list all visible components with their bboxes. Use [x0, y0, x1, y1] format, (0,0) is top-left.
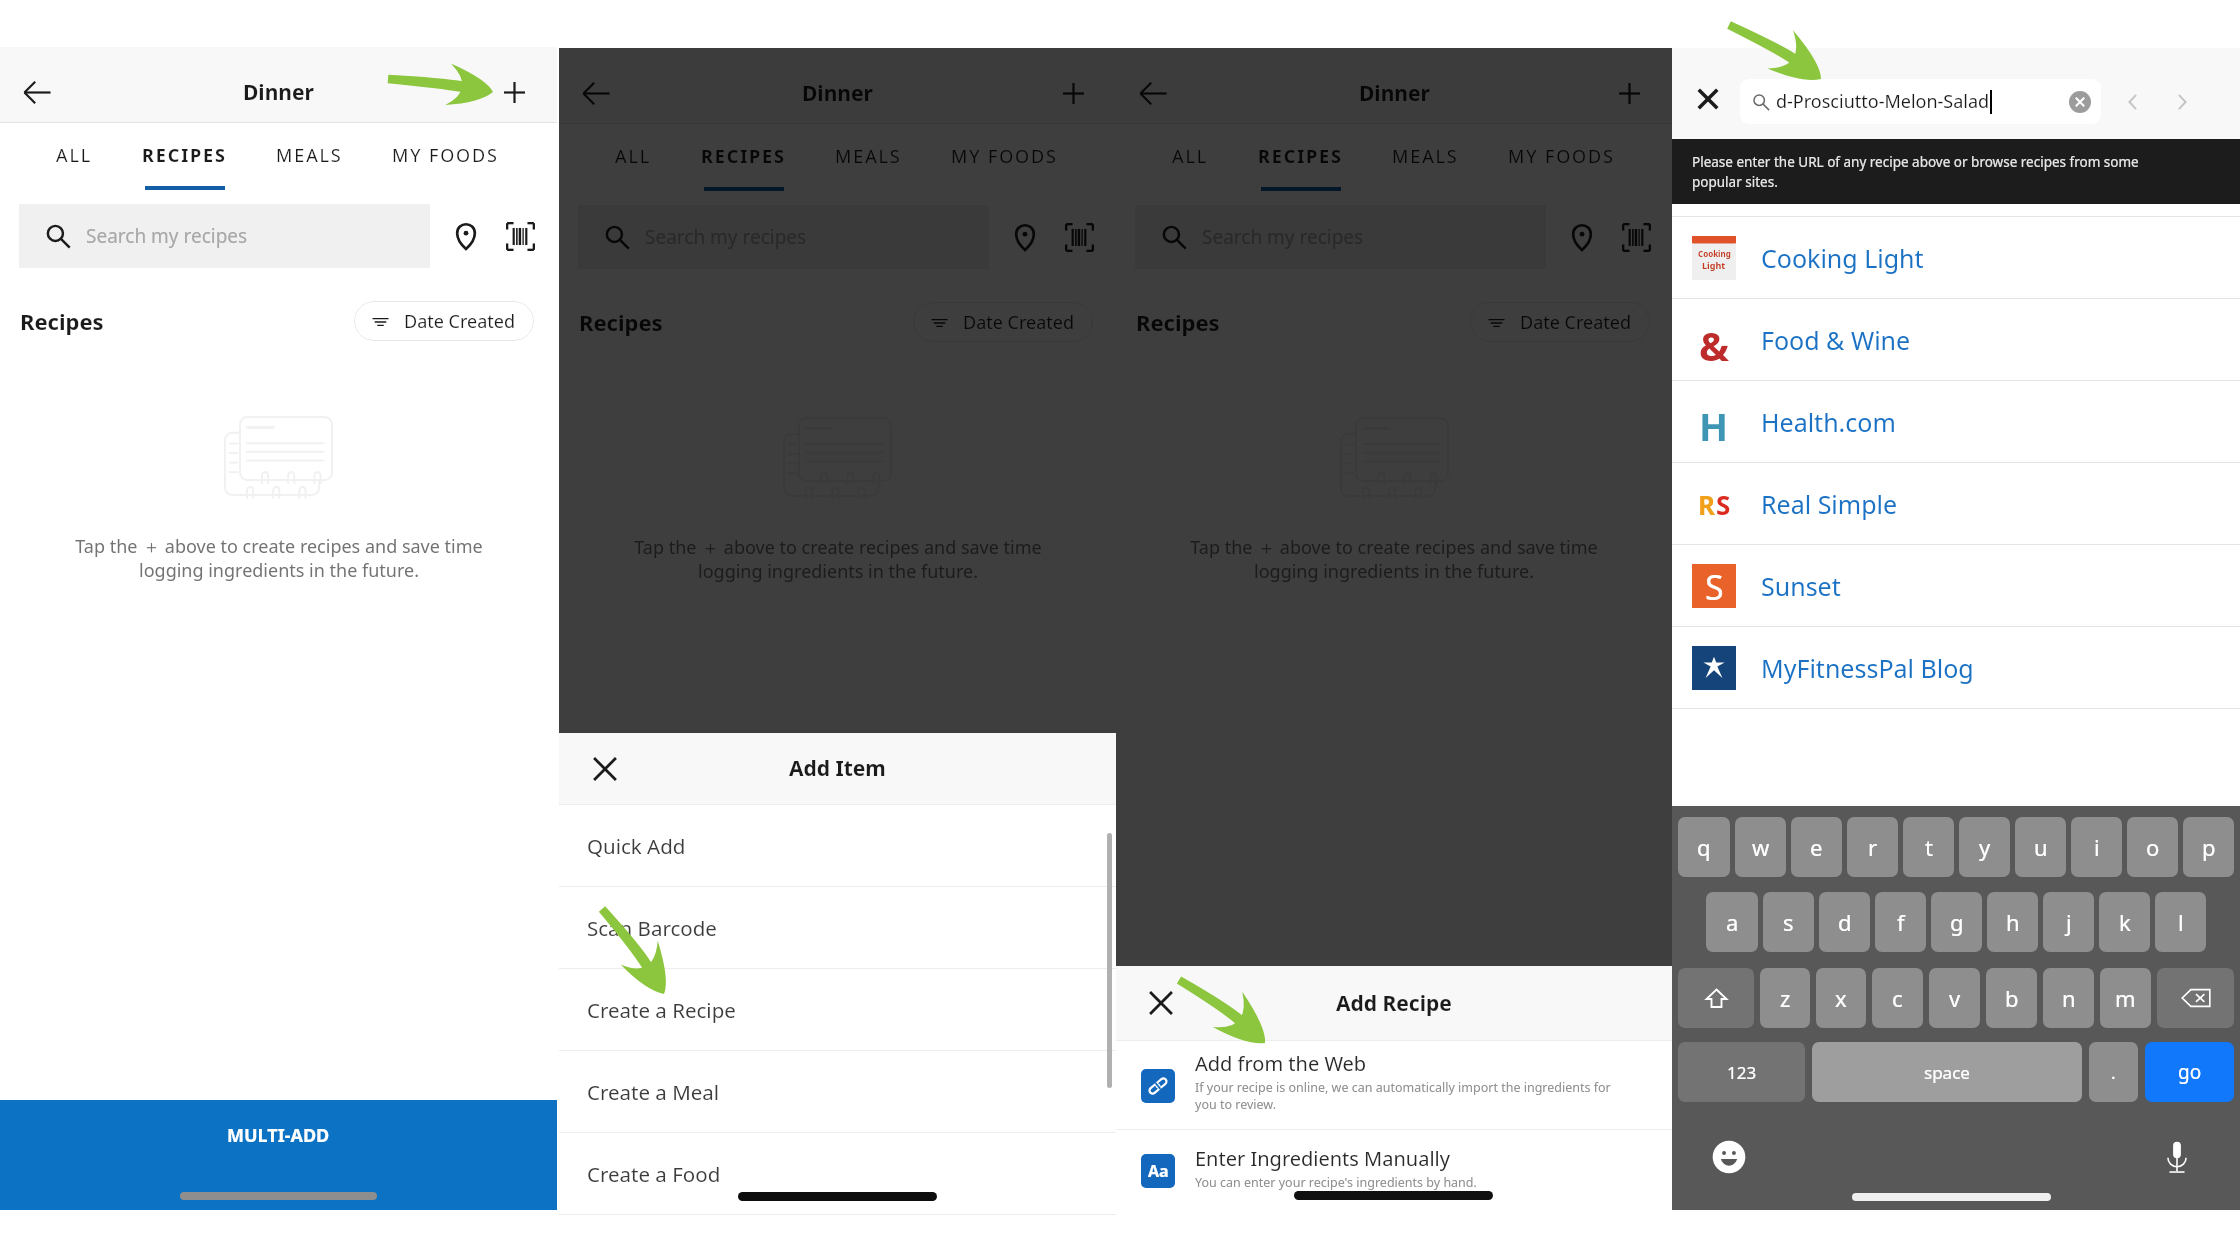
staticText: ALL [615, 144, 652, 169]
button[interactable]: MEALS [276, 143, 343, 193]
button[interactable]: Date Created [354, 301, 534, 341]
button[interactable]: w [1735, 817, 1786, 877]
button[interactable]: RECIPES [142, 143, 227, 193]
button[interactable]: v [1929, 968, 1980, 1028]
button[interactable]: go [2145, 1042, 2234, 1102]
staticText: ALL [1172, 144, 1209, 169]
staticText: Sunset [1761, 569, 1841, 603]
button[interactable]: Search my recipes [19, 204, 430, 268]
button[interactable]: y [1959, 817, 2010, 877]
button[interactable]: Emoji [1712, 1140, 1746, 1174]
button[interactable]: Close [1148, 990, 1174, 1016]
staticText: o [2146, 832, 2160, 862]
button[interactable]: ALL [615, 144, 652, 194]
button[interactable]: ALL [1172, 144, 1209, 194]
button[interactable]: Add [504, 82, 525, 103]
staticText: x [1835, 983, 1847, 1013]
button[interactable]: & [1672, 299, 2240, 380]
button[interactable]: h [1987, 892, 2038, 952]
button[interactable]: q [1678, 817, 1730, 877]
button[interactable]: Location [442, 204, 490, 268]
button[interactable]: i [2071, 817, 2122, 877]
button[interactable]: Clear [2069, 91, 2091, 113]
button[interactable]: Scan barcode [496, 204, 544, 268]
button[interactable]: MyFitnessPal Blog [1672, 627, 2240, 708]
button[interactable]: g [1931, 892, 1982, 952]
button[interactable]: MY FOODS [1508, 144, 1615, 194]
button[interactable]: l [2155, 892, 2206, 952]
button[interactable]: MY FOODS [951, 144, 1058, 194]
button[interactable]: u [2015, 817, 2066, 877]
button[interactable]: Close [1697, 88, 1719, 110]
button[interactable]: Location [1558, 205, 1606, 269]
button[interactable]: RECIPES [1258, 144, 1343, 194]
button[interactable]: Date Created [913, 302, 1093, 342]
staticText: Dinner [1359, 79, 1430, 108]
button[interactable]: Create a Food [559, 1133, 1116, 1214]
button[interactable]: s [1763, 892, 1814, 952]
staticText: n [2062, 983, 2076, 1013]
button[interactable]: p [2183, 817, 2234, 877]
button[interactable]: MULTI-ADD [1116, 1101, 1672, 1211]
button[interactable]: f [1875, 892, 1926, 952]
staticText: Cooking Light [1761, 241, 1924, 275]
button[interactable]: Aa [1116, 1130, 1672, 1210]
button[interactable]: r [1847, 817, 1898, 877]
button[interactable]: Backspace [2157, 968, 2234, 1028]
button[interactable]: Date Created [1470, 302, 1650, 342]
button[interactable]: Quick Add [559, 805, 1116, 886]
button[interactable]: Forward [2162, 79, 2202, 124]
staticText: MULTI-ADD [786, 1124, 889, 1149]
button[interactable]: . [2089, 1042, 2138, 1102]
button[interactable]: Voice input [2160, 1140, 2194, 1174]
staticText: t [1925, 832, 1933, 862]
button[interactable]: H [1672, 381, 2240, 462]
button[interactable]: e [1791, 817, 1842, 877]
button[interactable]: R [1672, 463, 2240, 544]
button[interactable]: Shift [1678, 968, 1754, 1028]
button[interactable]: Scan barcode [1612, 205, 1660, 269]
button[interactable]: Scan Barcode [559, 887, 1116, 968]
button[interactable]: RECIPES [701, 144, 786, 194]
button[interactable]: Search my recipes [1135, 205, 1546, 269]
button[interactable]: 123 [1678, 1042, 1805, 1102]
button[interactable]: Back [1139, 79, 1168, 108]
button[interactable]: space [1812, 1042, 2082, 1102]
button[interactable]: Close [592, 756, 618, 782]
button[interactable]: x [1816, 968, 1866, 1028]
button[interactable]: k [2099, 892, 2150, 952]
button[interactable]: MULTI-ADD [559, 1101, 1116, 1211]
button[interactable]: a [1706, 892, 1758, 952]
button[interactable]: o [2127, 817, 2178, 877]
staticText: Food & Wine [1761, 323, 1911, 357]
button[interactable]: d-Prosciutto-Melon-Salad [1740, 79, 2101, 124]
button[interactable]: Back [582, 79, 611, 108]
button[interactable]: MEALS [1392, 144, 1459, 194]
button[interactable]: S [1672, 545, 2240, 626]
button[interactable]: Search my recipes [578, 205, 989, 269]
staticText: m [2115, 983, 2136, 1013]
button[interactable]: d [1819, 892, 1870, 952]
button[interactable]: Create a Recipe [559, 969, 1116, 1050]
button[interactable]: MY FOODS [392, 143, 499, 193]
button[interactable]: z [1760, 968, 1810, 1028]
button[interactable]: Back [23, 78, 52, 107]
button[interactable]: n [2043, 968, 2094, 1028]
button[interactable]: MULTI-ADD [0, 1100, 557, 1210]
button[interactable]: MEALS [835, 144, 902, 194]
button[interactable]: Add [1063, 83, 1084, 104]
button[interactable]: m [2100, 968, 2151, 1028]
staticText: If your recipe is online, we can automat… [1195, 1079, 1611, 1112]
button[interactable]: b [1986, 968, 2037, 1028]
button[interactable]: j [2043, 892, 2094, 952]
button[interactable]: t [1903, 817, 1954, 877]
button[interactable]: Add [1619, 83, 1640, 104]
button[interactable]: Cooking [1672, 217, 2240, 298]
button[interactable]: Scan barcode [1055, 205, 1103, 269]
button[interactable]: Back [2113, 79, 2153, 124]
button[interactable]: ALL [56, 143, 93, 193]
button[interactable]: Location [1001, 205, 1049, 269]
button[interactable]: Create a Meal [559, 1051, 1116, 1132]
button[interactable]: c [1872, 968, 1923, 1028]
button[interactable]: Add from the Web [1116, 1041, 1672, 1129]
